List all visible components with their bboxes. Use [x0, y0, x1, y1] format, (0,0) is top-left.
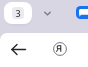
button[interactable]: Expand	[41, 7, 54, 20]
button[interactable]: Yandex	[53, 42, 67, 56]
button[interactable]: 3	[4, 2, 32, 24]
button[interactable]: Messenger	[76, 6, 88, 19]
staticText: 3	[15, 7, 21, 19]
button[interactable]: Back	[9, 40, 27, 58]
